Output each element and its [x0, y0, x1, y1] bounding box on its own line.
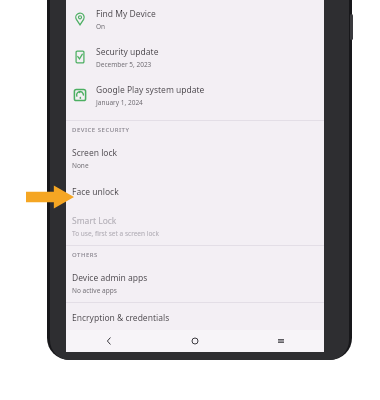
staticText: On — [96, 22, 106, 31]
button[interactable]: Smart Lock — [66, 207, 324, 245]
button[interactable]: Recent apps — [238, 330, 324, 352]
staticText: To use, first set a screen lock — [72, 229, 159, 238]
staticText: December 5, 2023 — [96, 60, 152, 69]
staticText: Smart Lock — [72, 215, 117, 227]
staticText: Google Play system update — [96, 84, 205, 96]
button[interactable]: Google Play system update — [66, 76, 324, 114]
staticText: OTHERS — [72, 251, 98, 259]
staticText: Encryption & credentials — [72, 312, 170, 324]
button[interactable]: Back — [66, 330, 152, 352]
button[interactable]: Screen lock — [66, 139, 324, 177]
staticText: Security update — [96, 46, 159, 58]
button[interactable]: Find My Device — [66, 0, 324, 38]
other: Pointer to Face unlock — [26, 184, 74, 210]
button[interactable]: Device admin apps — [66, 264, 324, 302]
button[interactable]: Home — [152, 330, 238, 352]
button[interactable]: Face unlock — [66, 177, 324, 207]
staticText: January 1, 2024 — [96, 98, 143, 107]
staticText: Screen lock — [72, 147, 118, 159]
staticText: None — [72, 161, 89, 170]
staticText: Device admin apps — [72, 272, 148, 284]
button[interactable]: Encryption & credentials — [66, 303, 324, 333]
button[interactable]: Security update — [66, 38, 324, 76]
staticText: DEVICE SECURITY — [72, 126, 130, 134]
staticText: No active apps — [72, 286, 117, 295]
staticText: Find My Device — [96, 8, 156, 20]
staticText: Face unlock — [72, 186, 119, 198]
